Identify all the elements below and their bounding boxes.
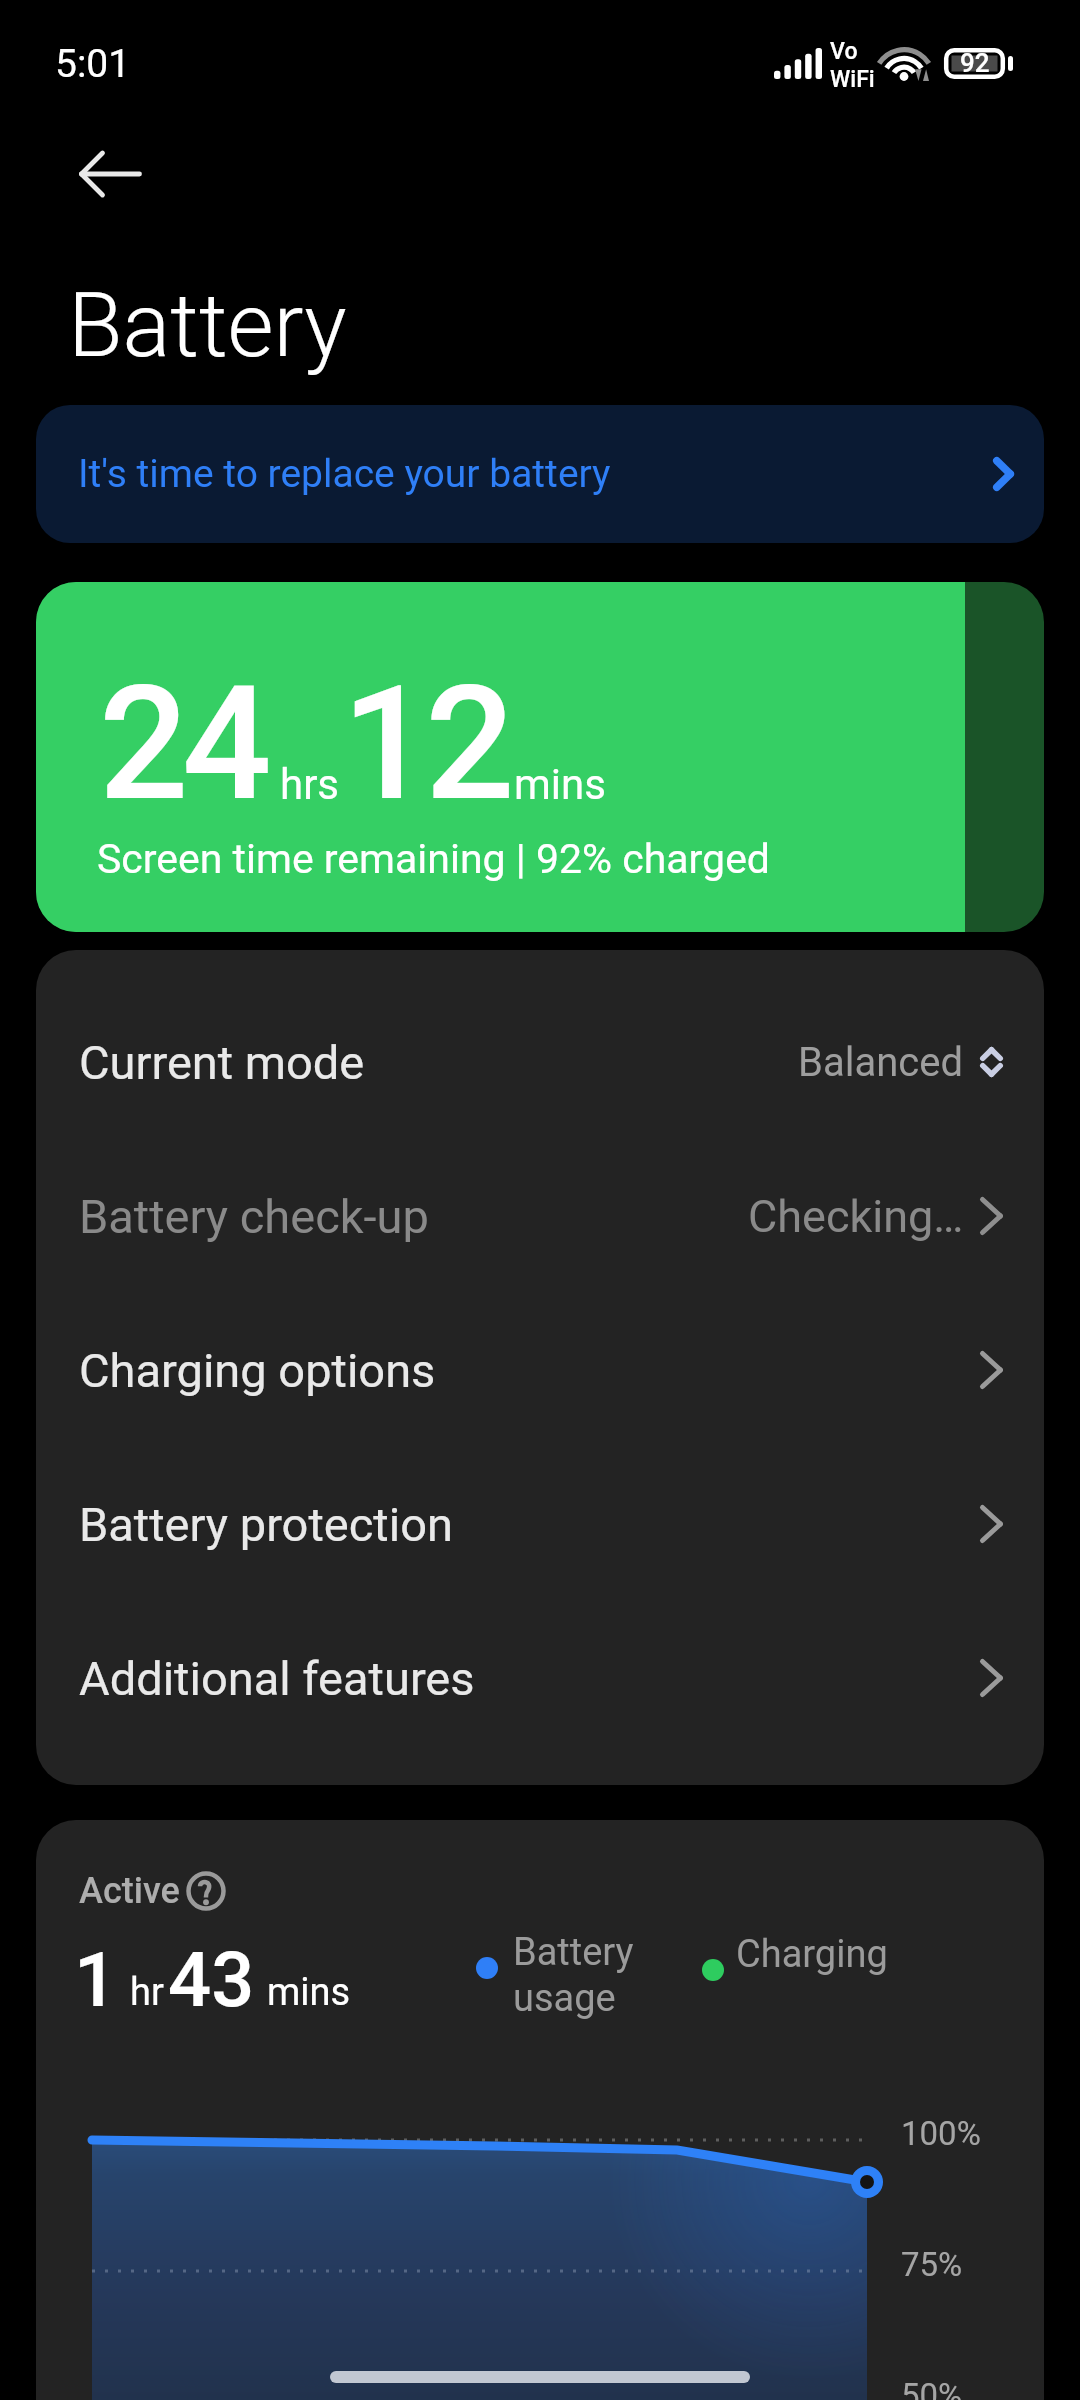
staticText: 50%	[901, 2376, 963, 2400]
staticText: It's time to replace your battery	[78, 451, 611, 497]
staticText: hrs	[280, 760, 340, 809]
staticText: Screen time remaining | 92% charged	[97, 835, 770, 883]
staticText: 12	[342, 652, 509, 836]
staticText: 24	[99, 652, 266, 836]
button[interactable]: Battery protection	[36, 1447, 1044, 1601]
staticText: 1	[74, 1935, 118, 2024]
button[interactable]: Back	[50, 114, 170, 234]
staticText: Vo	[830, 38, 858, 65]
staticText: 5:01	[55, 41, 131, 87]
staticText: hr	[130, 1970, 164, 2015]
staticText: 92	[960, 48, 990, 78]
button[interactable]: It's time to replace your battery	[36, 405, 1044, 543]
staticText: 43	[168, 1935, 255, 2024]
other: Help	[186, 1871, 226, 1911]
staticText: mins	[514, 760, 606, 809]
button[interactable]: 24	[36, 582, 1044, 932]
staticText: Checking…	[748, 1190, 964, 1243]
staticText: Active	[79, 1870, 180, 1912]
button[interactable]: Battery check-up	[36, 1139, 1044, 1293]
staticText: Additional features	[79, 1651, 475, 1706]
staticText: Battery protection	[79, 1497, 453, 1552]
staticText: 75%	[901, 2245, 963, 2284]
staticText: WiFi	[830, 66, 875, 93]
staticText: Charging options	[79, 1343, 436, 1398]
staticText: Current mode	[79, 1035, 365, 1090]
staticText: Charging	[736, 1932, 888, 1977]
staticText: 100%	[901, 2114, 981, 2153]
staticText: mins	[267, 1970, 351, 2015]
staticText: Battery usage	[513, 1930, 634, 2020]
staticText: Balanced	[798, 1039, 963, 1086]
button[interactable]: Current mode	[36, 985, 1044, 1139]
staticText: Battery check-up	[79, 1189, 429, 1244]
button[interactable]: Charging options	[36, 1293, 1044, 1447]
button[interactable]: Additional features	[36, 1601, 1044, 1755]
staticText: Battery	[68, 273, 347, 377]
